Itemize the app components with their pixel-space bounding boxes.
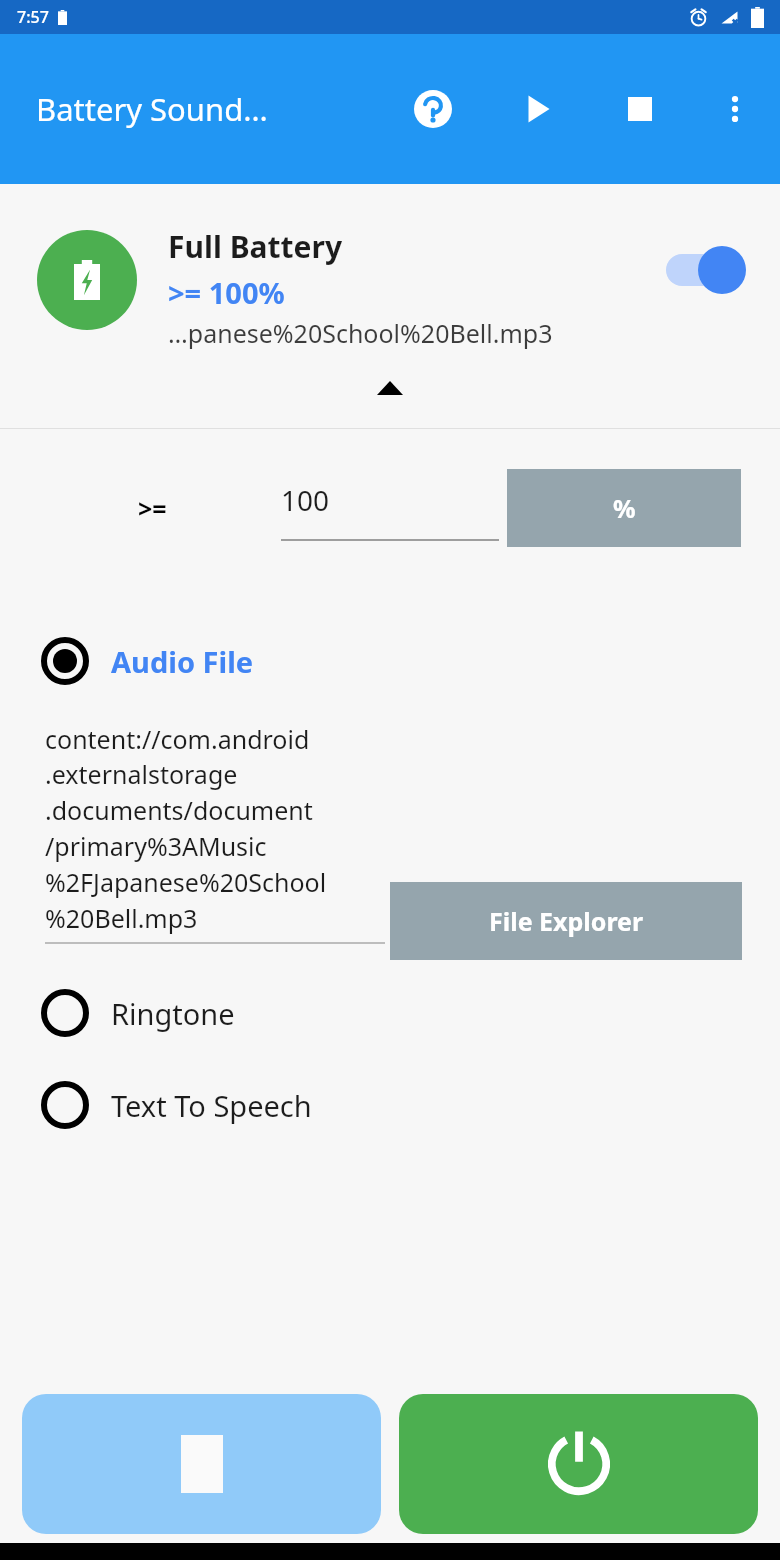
button[interactable]: Power toggle bbox=[399, 1394, 758, 1534]
staticText: Full Battery bbox=[168, 226, 343, 267]
staticText: Text To Speech bbox=[111, 1086, 312, 1125]
button[interactable]: Ringtone bbox=[0, 978, 780, 1048]
button[interactable]: More options bbox=[700, 74, 770, 144]
staticText: % bbox=[613, 491, 636, 525]
button[interactable]: Full Battery bbox=[0, 184, 780, 428]
button[interactable]: Stop bbox=[605, 74, 675, 144]
staticText: 7:57 bbox=[17, 6, 49, 28]
staticText: Audio File bbox=[111, 642, 254, 681]
staticText: >= bbox=[138, 491, 167, 525]
button[interactable]: Add alarm bbox=[22, 1394, 381, 1534]
button[interactable]: Text To Speech bbox=[0, 1070, 780, 1140]
staticText: >= 100% bbox=[168, 273, 285, 312]
button[interactable]: content://com.android .externalstorage .… bbox=[45, 722, 385, 944]
staticText: 100 bbox=[281, 481, 330, 519]
button[interactable]: Play bbox=[503, 74, 573, 144]
button[interactable]: Help bbox=[398, 74, 468, 144]
button[interactable]: % bbox=[507, 469, 741, 547]
button[interactable]: Audio File bbox=[0, 626, 780, 696]
button[interactable]: 100 bbox=[281, 469, 499, 541]
staticText: Ringtone bbox=[111, 994, 235, 1033]
staticText: content://com.android .externalstorage .… bbox=[45, 722, 327, 936]
staticText: File Explorer bbox=[489, 904, 644, 938]
button[interactable]: File Explorer bbox=[390, 882, 742, 960]
staticText: …panese%20School%20Bell.mp3 bbox=[168, 316, 553, 350]
button[interactable]: Collapse bbox=[355, 368, 425, 408]
staticText: Battery Sound… bbox=[36, 88, 268, 130]
button[interactable]: Enable alarm bbox=[660, 242, 756, 298]
